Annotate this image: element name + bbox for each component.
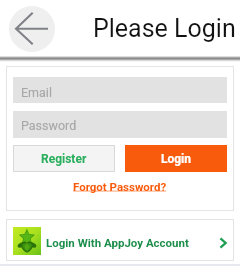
staticText: Login bbox=[161, 152, 192, 166]
button[interactable]: Email bbox=[13, 77, 227, 103]
staticText: Login With AppJoy Account bbox=[46, 236, 189, 249]
button[interactable]: Register bbox=[13, 145, 115, 172]
staticText: Email bbox=[21, 85, 52, 100]
button[interactable]: Login With AppJoy Account bbox=[6, 219, 234, 261]
staticText: Register bbox=[41, 152, 87, 166]
button[interactable]: Login bbox=[125, 145, 227, 172]
staticText: Password bbox=[21, 118, 77, 133]
button[interactable]: Forgot Password? bbox=[73, 180, 167, 193]
staticText: Please Login bbox=[93, 14, 236, 43]
button[interactable]: Back bbox=[9, 6, 55, 52]
button[interactable]: Password bbox=[13, 111, 227, 138]
